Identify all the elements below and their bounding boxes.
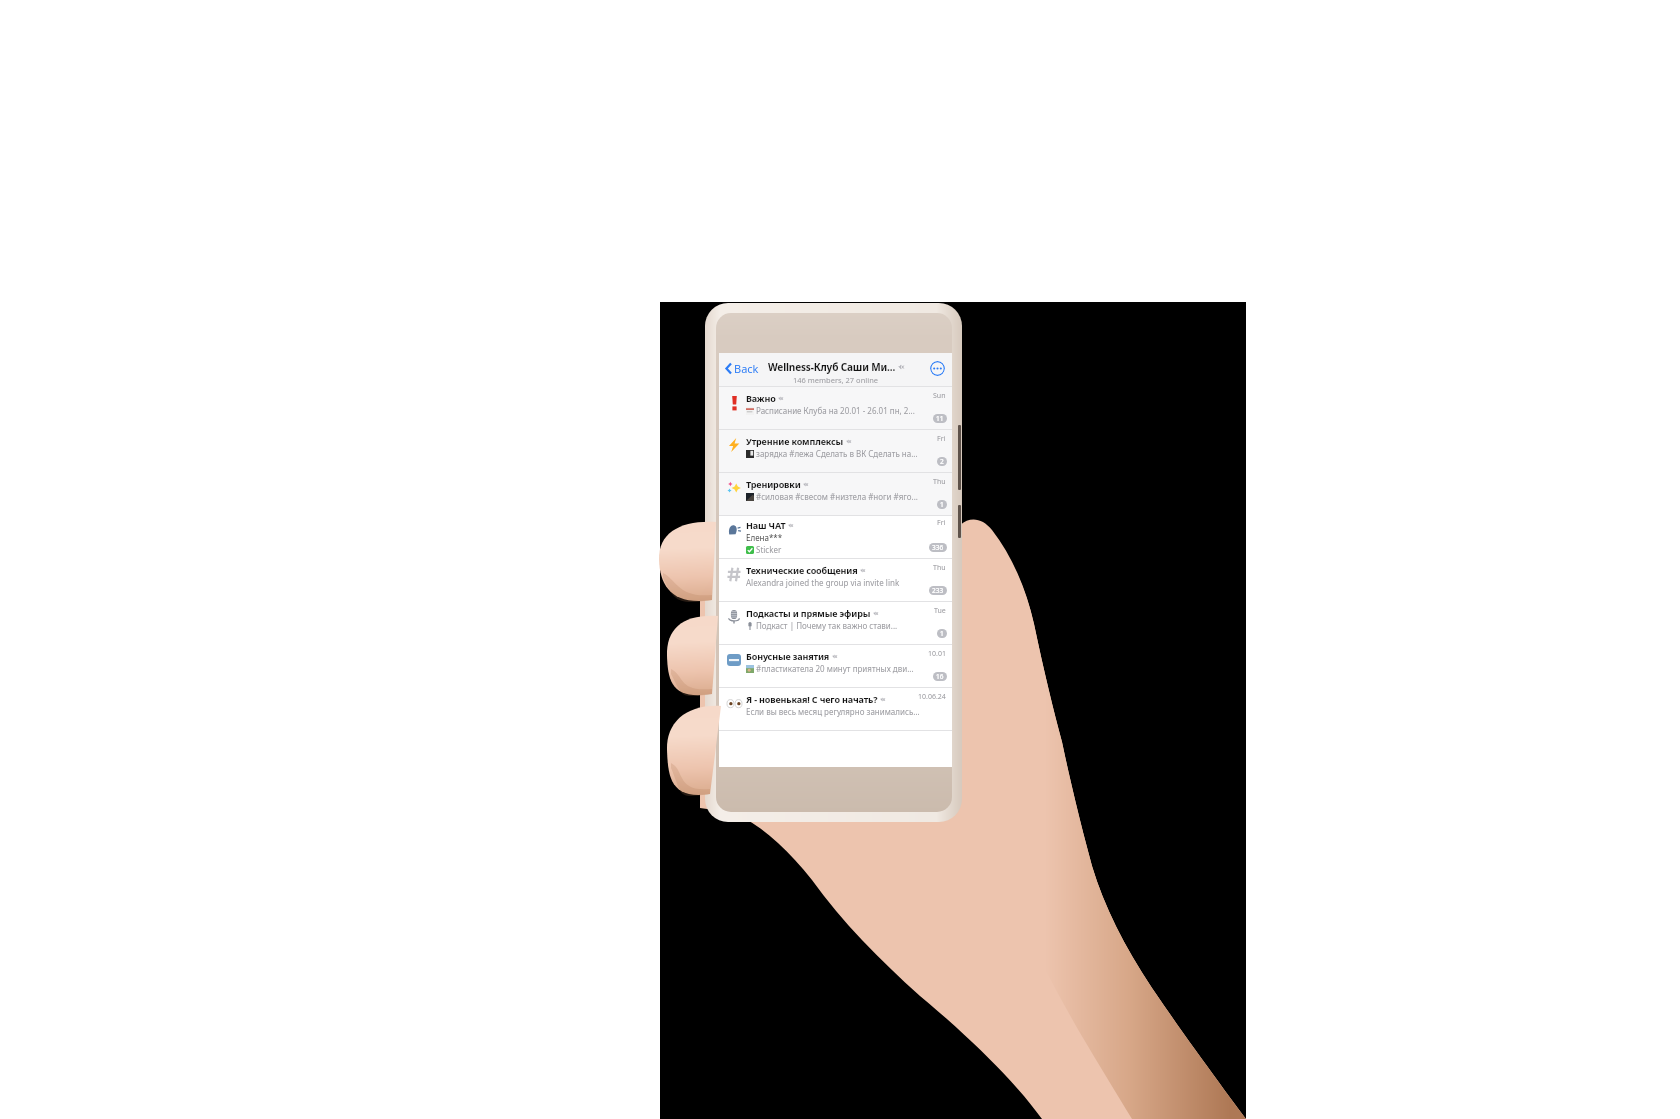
staticText: 336	[932, 543, 944, 552]
staticText: Wellness-Клуб Саши Ми...	[768, 360, 896, 374]
button[interactable]: Подкасты и прямые эфиры	[719, 602, 952, 645]
staticText: 146 members, 27 online	[793, 375, 879, 385]
staticText: Подкаст | Почему так важно стави...	[756, 620, 898, 631]
button[interactable]: Наш ЧАТ	[719, 516, 952, 559]
staticText: #силовая #свесом #низтела #ноги #яго...	[756, 491, 918, 502]
staticText: Thu	[933, 477, 946, 487]
staticText: 233	[932, 586, 944, 595]
staticText: Технические сообщения	[746, 564, 858, 576]
staticText: Подкасты и прямые эфиры	[746, 607, 871, 619]
staticText: 10.01	[928, 649, 946, 659]
staticText: Sticker	[756, 544, 782, 555]
staticText: 1	[940, 500, 944, 509]
button[interactable]: Я - новенькая! С чего начать?	[719, 688, 952, 731]
staticText: Alexandra joined the group via invite li…	[746, 577, 900, 588]
button[interactable]: Бонусные занятия	[719, 645, 952, 688]
button[interactable]: Back	[723, 357, 761, 380]
staticText: Sun	[933, 391, 946, 401]
button[interactable]: Технические сообщения	[719, 559, 952, 602]
staticText: Наш ЧАТ	[746, 519, 786, 531]
button[interactable]: Важно	[719, 387, 952, 430]
staticText: Я - новенькая! С чего начать?	[746, 693, 878, 705]
staticText: Утренние комплексы	[746, 435, 844, 447]
staticText: зарядка #лежа Сделать в ВК Сделать на...	[756, 448, 918, 459]
staticText: 16	[936, 672, 944, 681]
staticText: Thu	[933, 563, 946, 573]
staticText: Важно	[746, 392, 776, 404]
button[interactable]: Утренние комплексы	[719, 430, 952, 473]
staticText: Елена***	[746, 532, 783, 543]
staticText: Back	[734, 361, 759, 376]
staticText: Tue	[934, 606, 946, 616]
staticText: #пластикатела 20 минут приятных дви...	[756, 663, 914, 674]
staticText: Тренировки	[746, 478, 801, 490]
staticText: 2	[940, 457, 944, 466]
staticText: Бонусные занятия	[746, 650, 830, 662]
staticText: 1	[940, 629, 944, 638]
button[interactable]: More options	[930, 361, 945, 376]
staticText: Fri	[937, 434, 946, 444]
staticText: Fri	[937, 518, 946, 528]
button[interactable]: Тренировки	[719, 473, 952, 516]
staticText: 10.06.24	[918, 692, 946, 702]
staticText: Если вы весь месяц регулярно занимались,…	[746, 706, 921, 717]
staticText: Расписание Клуба на 20.01 - 26.01 пн, 2.…	[756, 405, 915, 416]
staticText: 11	[936, 414, 944, 423]
